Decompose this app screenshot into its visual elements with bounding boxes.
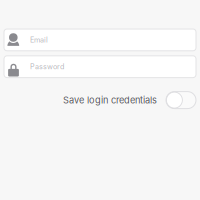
button[interactable]: Password — [4, 56, 196, 78]
button[interactable]: Email — [4, 29, 196, 51]
button[interactable]: Save login credentials — [166, 92, 196, 109]
staticText: Save login credentials — [63, 94, 157, 106]
staticText: Email — [30, 35, 48, 44]
staticText: Password — [30, 62, 64, 71]
